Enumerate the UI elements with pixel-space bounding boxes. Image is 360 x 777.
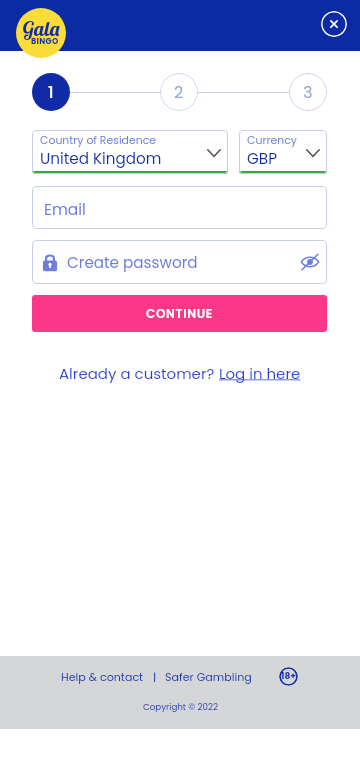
button[interactable]: 18 plus [279,667,298,686]
button[interactable]: Email [32,186,327,229]
staticText: Currency [247,133,297,148]
staticText: CONTINUE [146,305,213,322]
staticText: | [153,669,157,685]
button[interactable]: 3 [289,73,327,111]
staticText: 18+ [281,670,296,683]
button[interactable]: Safer Gambling [165,669,252,685]
button[interactable]: Log in here [219,363,301,384]
staticText: 1 [48,81,54,103]
staticText: GBP [247,148,277,169]
staticText: Gala [22,16,61,41]
staticText: Log in here [219,363,301,384]
staticText: Create password [67,252,198,273]
button[interactable]: Close [321,11,347,37]
staticText: Copyright © 2022 [143,701,218,713]
button[interactable]: Create password [32,240,327,284]
button[interactable]: 1 [32,73,70,111]
button[interactable]: Help & contact [61,669,144,685]
button[interactable]: CONTINUE [32,295,327,332]
staticText: Country of Residence [40,133,157,148]
button[interactable]: 2 [160,73,198,111]
staticText: 2 [174,81,184,103]
staticText: Already a customer? [59,363,219,384]
staticText: BINGO [31,36,59,47]
staticText: Email [44,199,86,221]
button[interactable]: Country of Residence [32,130,228,174]
staticText: 3 [303,81,313,103]
staticText: United Kingdom [40,148,162,169]
button[interactable]: Gala Bingo [16,8,66,58]
button[interactable]: Currency [239,130,327,174]
